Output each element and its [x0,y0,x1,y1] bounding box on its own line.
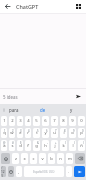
staticText: # [12,141,14,145]
button[interactable]: More suggestions [0,104,7,115]
button[interactable]: 3 [17,116,23,126]
button[interactable]: Send [73,91,84,102]
staticText: 0 [80,118,83,124]
staticText: , [18,169,20,175]
staticText: 9 [73,129,75,133]
button[interactable]: Space [24,166,64,177]
staticText: 7 [53,118,56,124]
staticText: para [9,107,19,113]
staticText: c [32,156,35,162]
button[interactable]: 5 [33,116,40,126]
button[interactable]: 1 [1,128,7,138]
button[interactable]: y [57,104,86,115]
button[interactable]: m [66,153,73,164]
staticText: k [62,143,65,149]
button[interactable]: ?123 [1,166,6,177]
button[interactable]: 2 [9,128,15,138]
button[interactable]: _ [25,140,31,151]
staticText: Español (EE. UU.) [33,170,55,174]
button[interactable]: Backspace [75,153,85,164]
staticText: 0 [82,129,84,133]
staticText: i [63,130,65,136]
staticText: 6 [46,129,48,133]
button[interactable]: + [51,140,58,151]
button[interactable]: n [57,153,64,164]
button[interactable]: 7 [51,116,58,126]
staticText: ChatGPT [16,3,39,10]
staticText: 4 [27,118,30,124]
staticText: . [68,169,70,175]
button[interactable]: Back [2,1,13,12]
button[interactable]: Shift [1,153,10,164]
button[interactable]: 4 [25,116,31,126]
button[interactable]: # [9,140,15,151]
button[interactable]: 8 [60,116,67,126]
button[interactable]: & [33,140,40,151]
staticText: m [68,156,72,162]
button[interactable]: 6 [42,116,49,126]
staticText: a [3,143,6,149]
staticText: v [41,156,44,162]
button[interactable]: z [12,153,19,164]
button[interactable]: de [28,104,57,115]
staticText: l [72,143,74,149]
staticText: 4 [28,129,30,133]
button[interactable]: 6 [42,128,49,138]
staticText: s [11,143,14,149]
button[interactable]: Emoji [8,166,14,177]
staticText: f [27,143,29,149]
button[interactable]: 0 [78,116,85,126]
staticText: y [44,130,47,136]
button[interactable]: ) [69,140,76,151]
staticText: x [23,156,26,162]
staticText: r [27,130,29,136]
staticText: o [71,130,74,136]
button[interactable]: 8 [60,128,67,138]
staticText: / [83,141,84,145]
staticText: e [19,130,22,136]
button[interactable]: 1 [1,116,7,126]
button[interactable]: 9 [69,128,76,138]
staticText: 2 [11,118,14,124]
staticText: 2 [12,129,14,133]
button[interactable]: 0 [78,128,85,138]
staticText: de [40,107,46,113]
staticText: d [19,143,22,149]
staticText: & [37,141,39,145]
staticText: 5 [37,129,39,133]
staticText: 5 [35,118,38,124]
staticText: z [15,156,17,162]
staticText: w [10,130,14,136]
button[interactable]: 7 [51,128,58,138]
button[interactable]: 2 [9,116,15,126]
staticText: u [53,130,56,136]
staticText: - [47,141,48,145]
staticText: q [3,130,6,136]
button[interactable]: 9 [69,116,76,126]
staticText: 5 ideas [3,94,18,100]
button[interactable]: b [48,153,55,164]
button[interactable]: c [30,153,37,164]
staticText: $ [20,141,22,145]
staticText: t [36,130,38,136]
button[interactable]: v [39,153,46,164]
button[interactable]: 5 [33,128,40,138]
button[interactable]: 4 [25,128,31,138]
button[interactable]: Send message [74,166,85,177]
staticText: 1 [3,118,6,124]
button[interactable]: $ [17,140,23,151]
button[interactable]: 3 [17,128,23,138]
staticText: @ [3,141,6,145]
button[interactable]: . [66,166,72,177]
button[interactable]: / [78,140,85,151]
button[interactable]: @ [1,140,7,151]
staticText: 9 [71,118,74,124]
button[interactable]: - [42,140,49,151]
button[interactable]: x [21,153,28,164]
button[interactable]: , [16,166,22,177]
button[interactable]: ( [60,140,67,151]
staticText: b [50,156,53,162]
button[interactable]: New chat [73,1,84,12]
button[interactable]: para [0,104,28,115]
staticText: n [59,156,62,162]
